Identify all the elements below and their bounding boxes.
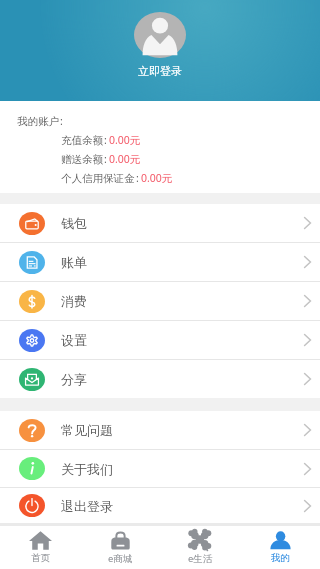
staticText: 我的	[271, 552, 290, 564]
staticText: 赠送余额	[61, 153, 103, 166]
button[interactable]: 钱包	[0, 204, 320, 242]
staticText: 消费	[61, 293, 87, 309]
staticText: 我的账户	[17, 115, 59, 128]
button[interactable]: 常见问题	[0, 411, 320, 449]
button[interactable]: 首页	[0, 526, 80, 569]
staticText: 首页	[31, 552, 50, 564]
button[interactable]: 账单	[0, 243, 320, 281]
staticText: :	[104, 133, 107, 147]
button[interactable]: 我的	[240, 526, 320, 569]
staticText: 0.00元	[109, 133, 141, 147]
staticText: e商城	[108, 552, 133, 565]
button[interactable]: e生活	[160, 526, 240, 569]
staticText: 常见问题	[61, 422, 113, 438]
staticText: 退出登录	[61, 498, 113, 514]
button[interactable]: Login	[134, 12, 186, 78]
staticText: :	[136, 171, 139, 185]
button[interactable]: 消费	[0, 282, 320, 320]
button[interactable]: 关于我们	[0, 450, 320, 487]
staticText: 立即登录	[138, 64, 182, 78]
button[interactable]: 分享	[0, 360, 320, 398]
staticText: 账单	[61, 254, 87, 270]
other: Login	[134, 12, 186, 58]
staticText: :	[60, 114, 63, 128]
staticText: 充值余额	[61, 134, 103, 147]
staticText: 个人信用保证金	[61, 172, 135, 185]
staticText: 分享	[61, 371, 87, 387]
staticText: 关于我们	[61, 461, 113, 477]
button[interactable]: 退出登录	[0, 488, 320, 523]
staticText: 设置	[61, 332, 87, 348]
button[interactable]: e商城	[80, 526, 160, 569]
staticText: 0.00元	[141, 171, 173, 185]
staticText: e生活	[188, 552, 213, 565]
staticText: 0.00元	[109, 152, 141, 166]
button[interactable]: 设置	[0, 321, 320, 359]
staticText: 钱包	[61, 215, 87, 231]
staticText: :	[104, 152, 107, 166]
